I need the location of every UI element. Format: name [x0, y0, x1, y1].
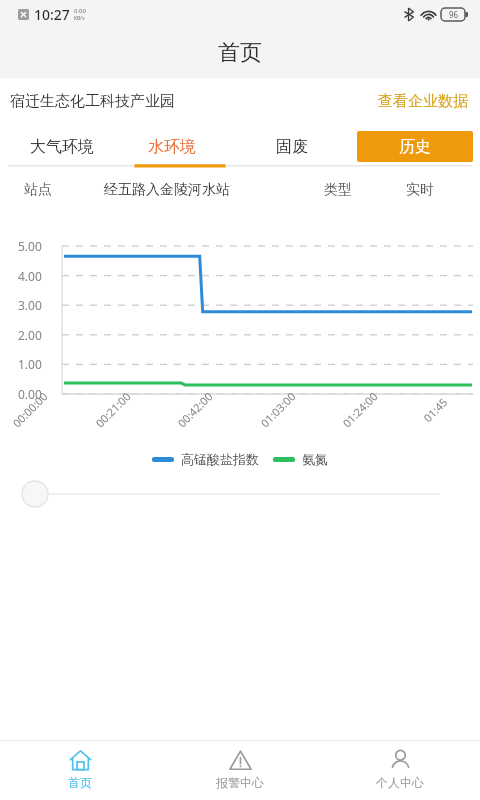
button[interactable]: 水环境 — [140, 129, 204, 165]
staticText: 5.00 — [18, 238, 58, 254]
button[interactable]: 个人中心 — [320, 741, 480, 800]
staticText: 00:42:00 — [174, 389, 216, 430]
button[interactable]: 查看企业数据 — [376, 86, 470, 117]
staticText: 首页 — [218, 39, 262, 67]
staticText: 大气环境 — [30, 137, 94, 157]
staticText: 96 — [449, 9, 459, 20]
button[interactable]: 历史 — [357, 131, 473, 162]
staticText: 3.00 — [18, 297, 58, 313]
staticText: 00:21:00 — [92, 389, 134, 430]
staticText: 0.00 — [74, 7, 86, 15]
staticText: KB/s — [74, 15, 85, 22]
button[interactable]: 大气环境 — [22, 129, 102, 165]
staticText: 首页 — [68, 775, 92, 790]
button[interactable]: 首页 — [0, 741, 160, 800]
staticText: 4.00 — [18, 268, 58, 284]
staticText: 站点 — [24, 181, 52, 199]
button[interactable]: 固废 — [268, 129, 316, 165]
staticText: 10:27 — [34, 5, 70, 24]
staticText: 水环境 — [148, 137, 196, 157]
staticText: 实时 — [406, 181, 434, 199]
staticText: 历史 — [399, 137, 431, 157]
staticText: 01:24:00 — [339, 389, 381, 430]
staticText: 报警中心 — [216, 775, 264, 790]
staticText: 固废 — [276, 137, 308, 157]
staticText: 高锰酸盐指数 — [181, 451, 259, 467]
staticText: 个人中心 — [376, 775, 424, 790]
staticText: 氨氮 — [302, 451, 328, 467]
button[interactable]: Time range slider — [0, 474, 480, 514]
staticText: 01:45 — [420, 394, 451, 425]
button[interactable]: 类型 — [318, 175, 358, 205]
staticText: 经五路入金陵河水站 — [104, 181, 230, 199]
staticText: 2.00 — [18, 327, 58, 343]
staticText: 0.00 — [18, 386, 58, 402]
staticText: 1.00 — [18, 356, 58, 372]
staticText: 类型 — [324, 181, 352, 199]
button[interactable]: 实时 — [400, 175, 440, 205]
staticText: 宿迁生态化工科技产业园 — [10, 92, 175, 111]
button[interactable]: 报警中心 — [160, 741, 320, 800]
staticText: 查看企业数据 — [378, 92, 468, 111]
button[interactable]: 经五路入金陵河水站 — [98, 175, 236, 205]
staticText: 01:03:00 — [257, 389, 299, 430]
staticText: 00:00:00 — [9, 389, 51, 430]
button[interactable]: 站点 — [18, 175, 58, 205]
